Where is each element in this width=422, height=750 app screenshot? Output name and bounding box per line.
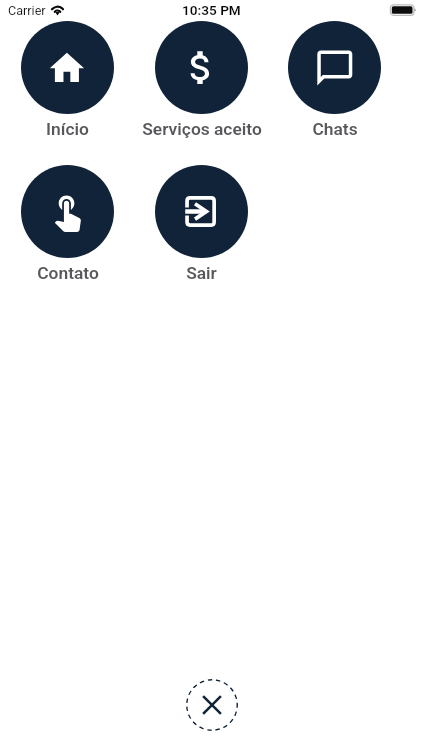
button[interactable]: Fechar menu <box>186 679 238 731</box>
staticText: 10:35 PM <box>182 2 241 18</box>
staticText: Sair <box>186 263 217 283</box>
button[interactable]: Contato <box>21 165 114 258</box>
staticText: Contato <box>37 263 99 283</box>
staticText: Início <box>46 119 89 139</box>
other: Bateria <box>389 2 419 18</box>
button[interactable]: Chats <box>288 21 381 114</box>
button[interactable]: Início <box>21 21 114 114</box>
button[interactable]: Serviços aceitos <box>155 21 248 114</box>
staticText: Chats <box>312 119 358 139</box>
button[interactable]: Sair <box>155 165 248 258</box>
staticText: Carrier <box>8 3 46 18</box>
staticText: Serviços aceito <box>142 119 262 139</box>
other: Wi-Fi <box>50 2 64 16</box>
